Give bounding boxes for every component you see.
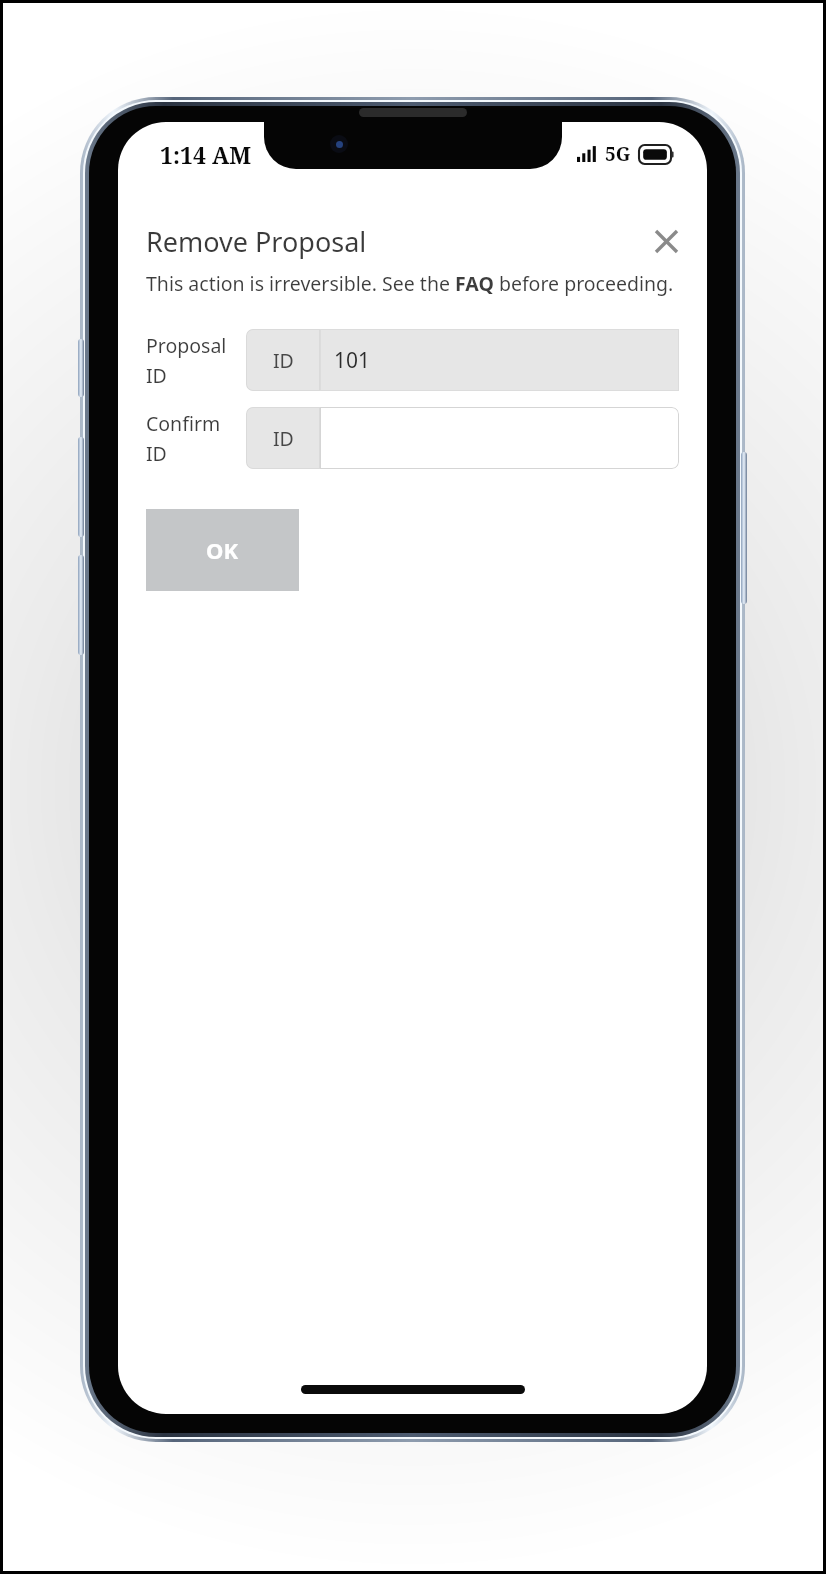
- button[interactable]: ID: [246, 329, 679, 391]
- staticText: ID: [273, 347, 294, 374]
- staticText: Proposal ID: [146, 332, 238, 388]
- staticText: 101: [334, 346, 371, 375]
- button[interactable]: ID: [246, 407, 679, 469]
- button[interactable]: Close: [645, 220, 687, 262]
- staticText: OK: [206, 535, 239, 565]
- staticText: Remove Proposal: [146, 223, 367, 260]
- staticText: This action is irreversible. See the FAQ…: [146, 270, 674, 297]
- button[interactable]: OK: [146, 509, 299, 591]
- staticText: ID: [273, 425, 294, 452]
- staticText: 5G: [605, 141, 631, 167]
- staticText: 1:14 AM: [160, 139, 252, 170]
- staticText: Confirm ID: [146, 410, 238, 466]
